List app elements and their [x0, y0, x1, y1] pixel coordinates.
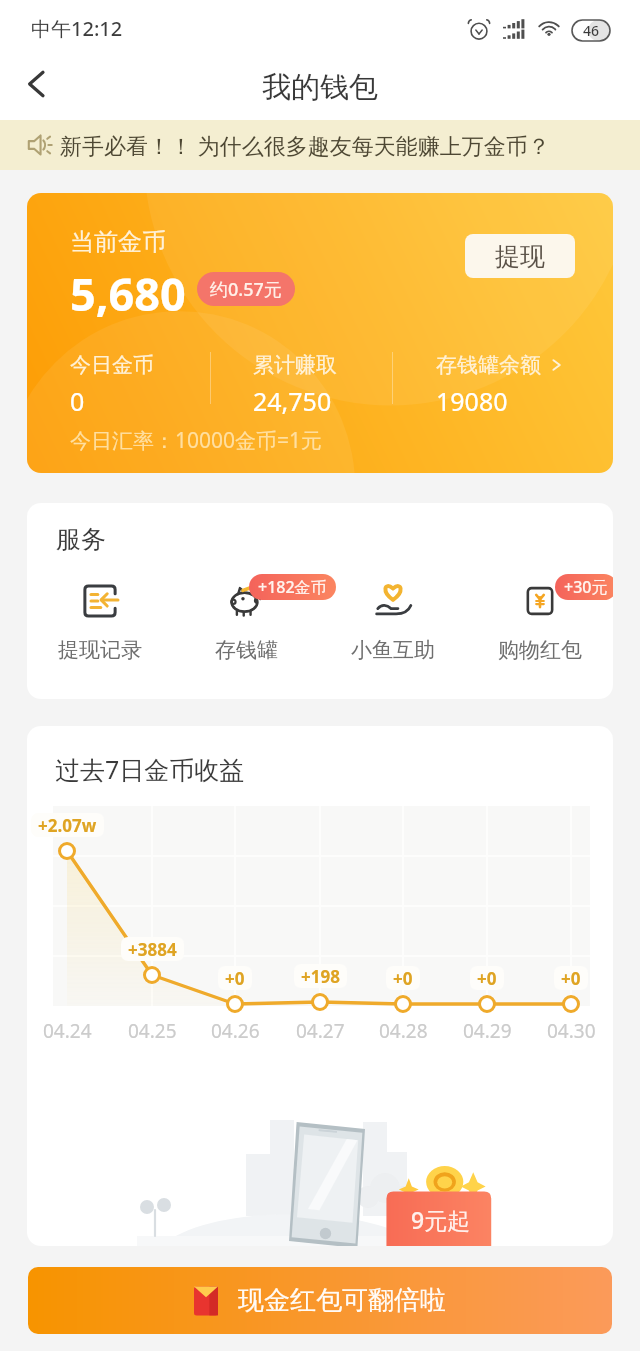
staticText: +3884 — [128, 938, 177, 961]
button[interactable]: 新手必看！！ 为什么很多趣友每天能赚上万金币？ — [0, 120, 640, 170]
staticText: 04.29 — [463, 1018, 512, 1044]
staticText: 24,750 — [253, 384, 332, 418]
staticText: +30元 — [564, 576, 608, 598]
staticText: 今日汇率：10000金币=1元 — [70, 426, 323, 455]
staticText: 04.28 — [379, 1018, 428, 1044]
staticText: 今日金币 — [70, 352, 154, 378]
staticText: 04.30 — [547, 1018, 596, 1044]
staticText: 46 — [583, 21, 600, 40]
staticText: 当前金币 — [70, 227, 166, 257]
button[interactable]: 现金红包可翻倍啦 — [28, 1267, 612, 1334]
staticText: 04.25 — [128, 1018, 177, 1044]
button[interactable]: 提现记录 — [27, 581, 173, 663]
staticText: +182金币 — [258, 576, 327, 598]
staticText: 提现 — [495, 241, 545, 272]
staticText: +0 — [477, 967, 497, 990]
staticText: +198 — [301, 965, 340, 988]
button[interactable]: 提现 — [465, 234, 575, 278]
staticText: 小鱼互助 — [351, 637, 435, 663]
staticText: +0 — [225, 967, 245, 990]
staticText: 服务 — [56, 524, 106, 555]
staticText: 累计赚取 — [253, 352, 337, 378]
staticText: 5,680 — [70, 263, 186, 324]
staticText: 04.26 — [211, 1018, 260, 1044]
staticText: 9元起 — [411, 1204, 471, 1235]
staticText: 新手必看！！ 为什么很多趣友每天能赚上万金币？ — [60, 130, 550, 160]
staticText: 中午12:12 — [31, 15, 123, 42]
button[interactable]: Back — [6, 54, 66, 114]
staticText: 购物红包 — [498, 637, 582, 663]
button[interactable]: 小鱼互助 — [319, 581, 466, 663]
button[interactable]: +182金币 — [173, 581, 319, 663]
staticText: 0 — [70, 384, 85, 418]
staticText: +0 — [561, 967, 581, 990]
staticText: 提现记录 — [58, 637, 142, 663]
button[interactable]: 当前金币 — [27, 193, 613, 473]
staticText: 04.24 — [43, 1018, 92, 1044]
staticText: +2.07w — [38, 814, 97, 837]
staticText: 现金红包可翻倍啦 — [238, 1284, 446, 1317]
staticText: 存钱罐余额 — [436, 352, 541, 378]
button[interactable]: +30元 — [466, 581, 613, 663]
staticText: 04.27 — [296, 1018, 345, 1044]
staticText: 我的钱包 — [262, 69, 378, 106]
staticText: +0 — [393, 967, 413, 990]
staticText: 19080 — [436, 384, 508, 418]
staticText: 约0.57元 — [210, 277, 282, 302]
staticText: 过去7日金币收益 — [55, 752, 245, 786]
staticText: 存钱罐 — [215, 637, 278, 663]
